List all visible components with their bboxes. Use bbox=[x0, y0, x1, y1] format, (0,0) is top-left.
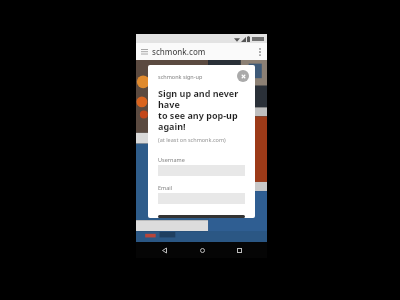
staticText: schmonk sign-up bbox=[158, 73, 203, 80]
button[interactable]: Recent apps bbox=[229, 242, 249, 258]
staticText: Email bbox=[158, 184, 173, 191]
button[interactable]: Home bbox=[192, 242, 212, 258]
staticText: Username bbox=[158, 156, 185, 163]
button[interactable]: Back bbox=[154, 242, 174, 258]
staticText: schmonk.com bbox=[152, 46, 206, 57]
button[interactable]: Close bbox=[237, 70, 249, 82]
staticText: (at least on schmonk.com) bbox=[158, 136, 226, 143]
staticText: Sign up and never have to see any pop-up… bbox=[158, 87, 245, 132]
button[interactable]: Menu bbox=[136, 43, 152, 60]
button[interactable]: More options bbox=[253, 43, 267, 60]
button[interactable]: Sign up bbox=[158, 215, 245, 218]
